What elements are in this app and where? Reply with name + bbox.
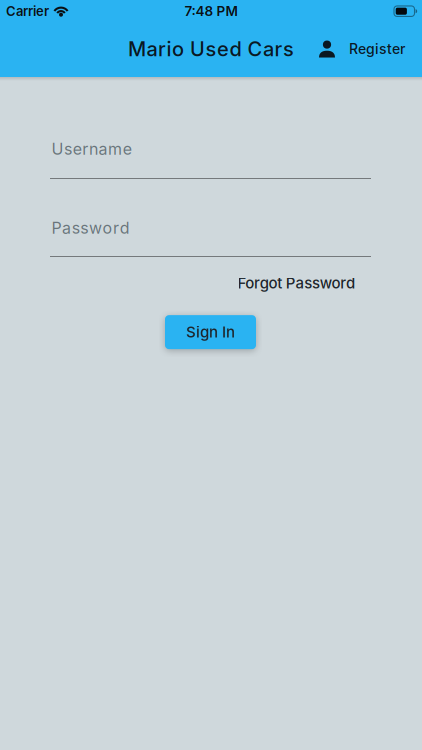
staticText: Forgot Password: [237, 274, 355, 292]
staticText: 7:48 PM: [184, 3, 237, 19]
button[interactable]: Forgot Password: [229, 266, 363, 300]
staticText: Mario Used Cars: [128, 37, 294, 61]
textField[interactable]: Password: [50, 218, 371, 238]
staticText: Password: [51, 218, 130, 238]
staticText: Password: [50, 218, 124, 238]
staticText: Register: [349, 40, 405, 57]
staticText: Sign In: [186, 323, 235, 341]
button[interactable]: Register: [319, 34, 422, 63]
staticText: Carrier: [6, 3, 49, 19]
staticText: Username: [51, 139, 132, 159]
textField[interactable]: Username: [50, 139, 371, 159]
staticText: Username: [50, 139, 126, 159]
button[interactable]: Sign In: [165, 315, 256, 349]
